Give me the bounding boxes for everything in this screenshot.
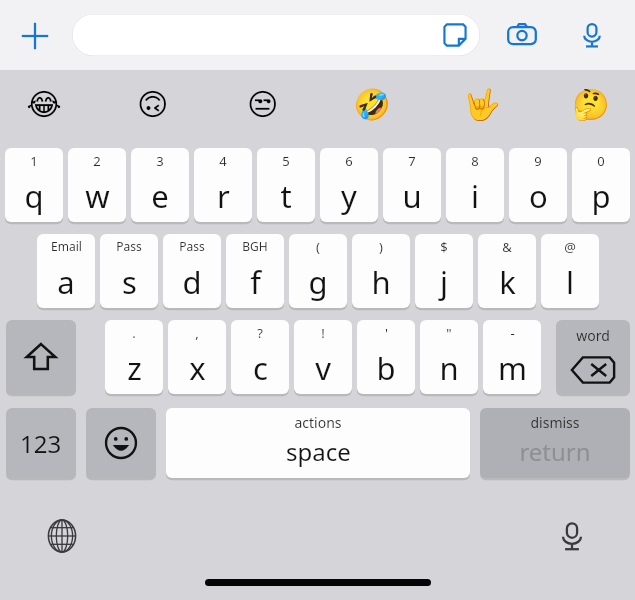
button[interactable]: ? <box>231 320 289 394</box>
staticText: 123 <box>20 427 62 460</box>
staticText: z <box>127 347 142 389</box>
staticText: c <box>253 347 268 389</box>
staticText: 1 <box>30 152 38 170</box>
staticText: f <box>250 261 261 303</box>
button[interactable]: 🤣 <box>338 70 406 138</box>
button[interactable]: ! <box>294 320 352 394</box>
button[interactable]: @ <box>541 234 599 308</box>
button[interactable]: 5 <box>257 148 315 222</box>
button[interactable]: & <box>478 234 536 308</box>
staticText: ) <box>379 238 383 256</box>
staticText: dismiss <box>530 413 580 432</box>
button[interactable]: Camera <box>500 13 544 57</box>
button[interactable]: $ <box>415 234 473 308</box>
staticText: 3 <box>156 152 164 170</box>
staticText: word <box>576 326 610 345</box>
staticText: d <box>182 261 202 303</box>
staticText: 2 <box>93 152 101 170</box>
staticText: space <box>286 435 351 468</box>
button[interactable]: 🤟 <box>448 70 516 138</box>
button[interactable]: ) <box>352 234 410 308</box>
button[interactable]: 4 <box>194 148 252 222</box>
button[interactable]: Voice input <box>570 13 614 57</box>
button[interactable]: 1 <box>5 148 63 222</box>
button[interactable]: " <box>420 320 478 394</box>
button[interactable]: Pass <box>100 234 158 308</box>
staticText: n <box>439 347 459 389</box>
staticText: y <box>341 175 357 217</box>
button[interactable]: , <box>168 320 226 394</box>
staticText: ( <box>316 238 320 256</box>
staticText: i <box>471 175 479 217</box>
button[interactable]: Email <box>37 234 95 308</box>
staticText: ! <box>321 324 325 342</box>
button[interactable]: dismiss <box>480 408 630 478</box>
button[interactable]: 🤔 <box>557 70 625 138</box>
button[interactable]: 🙃 <box>119 70 187 138</box>
button[interactable]: Pass <box>163 234 221 308</box>
staticText: ' <box>385 324 388 342</box>
staticText: 6 <box>345 152 353 170</box>
staticText: 7 <box>408 152 416 170</box>
button[interactable]: Delete word <box>556 320 630 394</box>
staticText: 9 <box>534 152 542 170</box>
staticText: m <box>498 347 527 389</box>
button[interactable]: Stickers <box>72 14 480 56</box>
staticText: - <box>510 324 515 342</box>
button[interactable]: 9 <box>509 148 567 222</box>
button[interactable]: Dictation <box>546 510 598 562</box>
button[interactable]: actions <box>166 408 470 478</box>
button[interactable]: 3 <box>131 148 189 222</box>
staticText: j <box>440 261 448 303</box>
button[interactable]: 😒 <box>229 70 297 138</box>
button[interactable]: BGH <box>226 234 284 308</box>
staticText: k <box>499 261 516 303</box>
button[interactable]: ' <box>357 320 415 394</box>
staticText: g <box>308 261 328 303</box>
staticText: ? <box>257 324 263 342</box>
staticText: 🤟 <box>463 87 501 122</box>
button[interactable]: 😂 <box>10 70 78 138</box>
staticText: @ <box>564 238 576 256</box>
staticText: e <box>151 175 169 217</box>
staticText: BGH <box>242 238 268 254</box>
button[interactable]: 6 <box>320 148 378 222</box>
button[interactable]: 7 <box>383 148 441 222</box>
staticText: 🤔 <box>572 87 610 122</box>
staticText: 🤣 <box>353 87 391 122</box>
staticText: Pass <box>116 238 142 254</box>
button[interactable]: Emoji <box>86 408 156 478</box>
staticText: . <box>132 324 136 342</box>
button[interactable]: 0 <box>572 148 630 222</box>
staticText: Email <box>51 238 82 254</box>
staticText: 0 <box>597 152 605 170</box>
staticText: p <box>591 175 611 217</box>
button[interactable]: Add <box>12 13 58 59</box>
staticText: 😒 <box>247 87 279 122</box>
button[interactable]: 8 <box>446 148 504 222</box>
staticText: 8 <box>471 152 479 170</box>
button[interactable]: - <box>483 320 541 394</box>
staticText: Pass <box>179 238 205 254</box>
staticText: & <box>502 238 512 256</box>
staticText: s <box>122 261 137 303</box>
staticText: w <box>85 175 110 217</box>
button[interactable]: ( <box>289 234 347 308</box>
staticText: r <box>217 175 230 217</box>
staticText: h <box>371 261 391 303</box>
staticText: 😂 <box>26 87 62 122</box>
staticText: $ <box>440 238 448 256</box>
staticText: 🙃 <box>137 87 169 122</box>
staticText: actions <box>294 413 342 432</box>
button[interactable]: Change keyboard language <box>36 510 88 562</box>
button[interactable]: . <box>105 320 163 394</box>
staticText: v <box>315 347 331 389</box>
button[interactable]: 2 <box>68 148 126 222</box>
staticText: q <box>24 175 44 217</box>
button[interactable]: 123 <box>6 408 76 478</box>
staticText: 5 <box>282 152 290 170</box>
staticText: u <box>402 175 422 217</box>
button[interactable]: Stickers <box>440 20 470 50</box>
staticText: o <box>529 175 548 217</box>
button[interactable]: Shift <box>6 320 76 394</box>
